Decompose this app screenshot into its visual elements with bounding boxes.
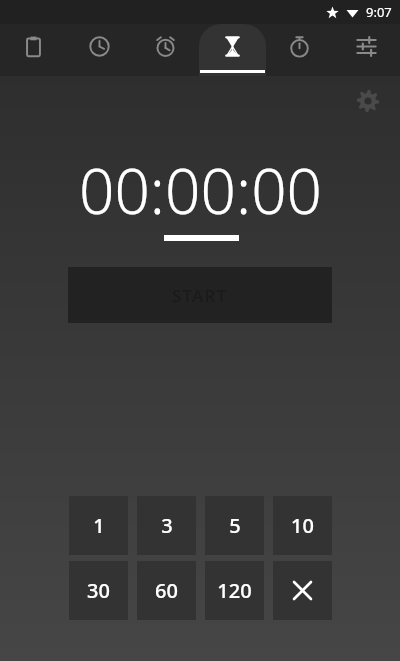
staticText: 60 bbox=[155, 577, 178, 604]
button[interactable]: Settings bbox=[350, 83, 386, 119]
button[interactable]: Clear bbox=[273, 561, 332, 620]
button[interactable]: Notes bbox=[0, 24, 66, 76]
button[interactable]: 60 bbox=[137, 561, 196, 620]
staticText: 5 bbox=[229, 512, 241, 539]
button[interactable]: 30 bbox=[69, 561, 128, 620]
button[interactable]: Alarm bbox=[132, 24, 199, 76]
button[interactable]: 1 bbox=[69, 496, 128, 555]
button[interactable]: 5 bbox=[205, 496, 264, 555]
button[interactable]: 120 bbox=[205, 561, 264, 620]
button[interactable]: Timer bbox=[199, 24, 266, 76]
button[interactable]: 3 bbox=[137, 496, 196, 555]
button[interactable]: Settings tabs bbox=[333, 24, 400, 76]
staticText: 30 bbox=[87, 577, 110, 604]
button[interactable]: Clock bbox=[66, 24, 132, 76]
staticText: 10 bbox=[291, 512, 314, 539]
staticText: 1 bbox=[93, 512, 105, 539]
button[interactable]: Stopwatch bbox=[266, 24, 333, 76]
staticText: 120 bbox=[217, 577, 252, 604]
button[interactable]: 00 bbox=[165, 148, 236, 232]
button[interactable]: 00: bbox=[79, 148, 165, 232]
staticText: 9:07 bbox=[366, 3, 392, 21]
button[interactable]: 10 bbox=[273, 496, 332, 555]
button[interactable]: :00 bbox=[236, 148, 322, 232]
staticText: 3 bbox=[161, 512, 173, 539]
